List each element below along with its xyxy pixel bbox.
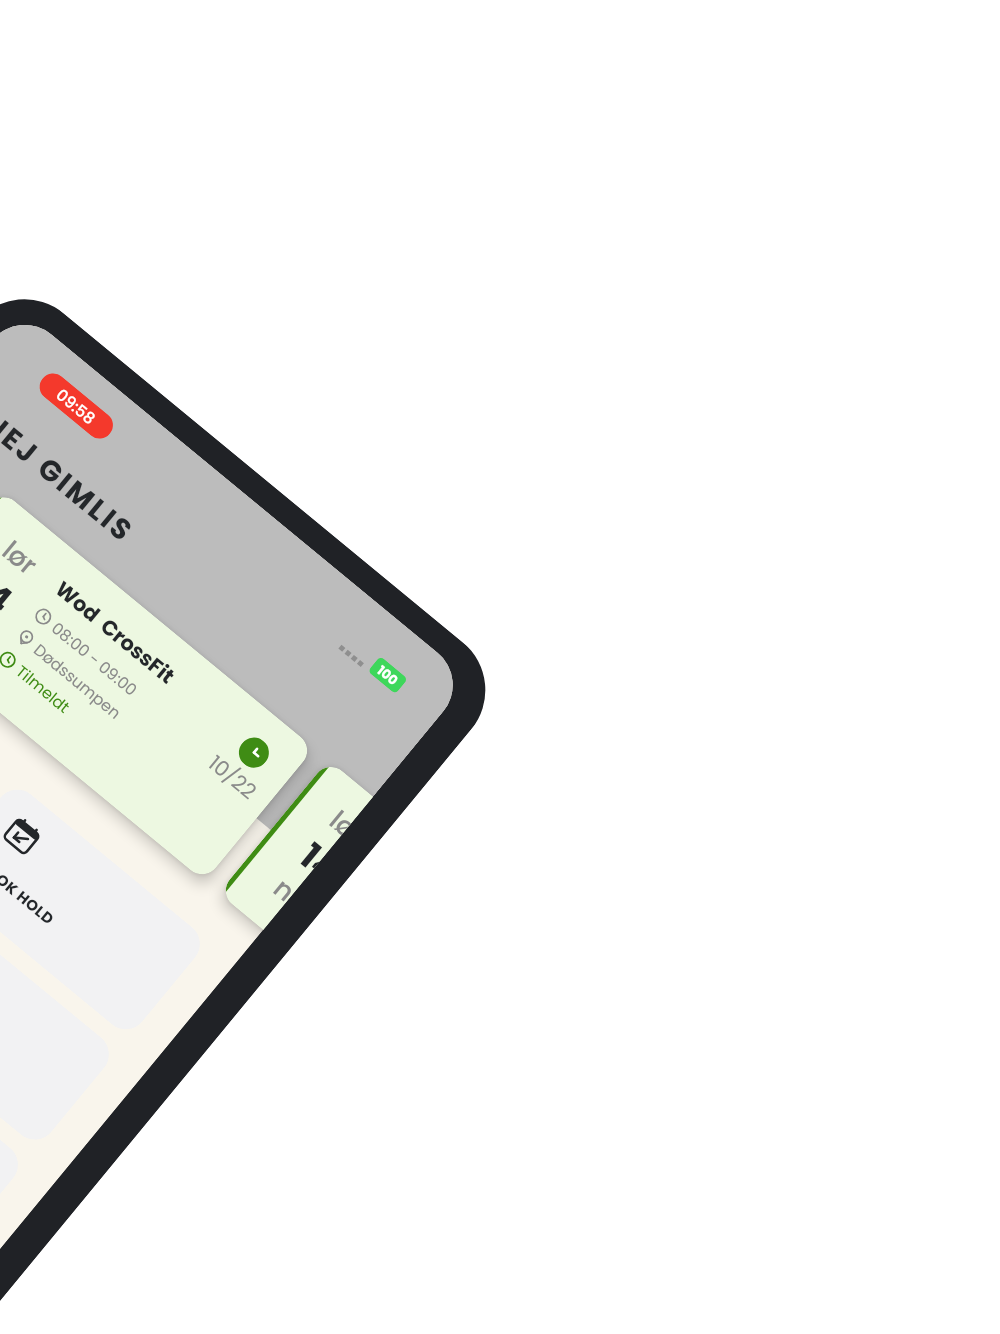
staticText: HEJ GIMLIS xyxy=(0,403,143,553)
staticText: nov xyxy=(265,870,303,911)
staticText: 14 xyxy=(0,562,23,624)
button[interactable]: Book class xyxy=(0,781,209,1038)
staticText: Dødssumpen xyxy=(29,639,126,724)
other: Book class xyxy=(1,814,43,856)
staticText: lør xyxy=(0,532,45,584)
staticText: Tilmeldt xyxy=(11,660,75,718)
button[interactable]: Book class xyxy=(0,610,2,868)
button[interactable]: lør xyxy=(0,490,314,882)
staticText: Wod CrossFit xyxy=(49,574,181,690)
staticText: 10/22 xyxy=(202,749,263,806)
button[interactable]: Book class xyxy=(0,891,118,1148)
staticText: lør xyxy=(321,802,359,843)
button[interactable]: Book class xyxy=(0,1001,27,1259)
staticText: 100 xyxy=(374,661,402,689)
button[interactable]: lør xyxy=(218,760,373,930)
staticText: 14 xyxy=(289,831,335,881)
staticText: 08:00 - 09:00 xyxy=(47,617,142,701)
staticText: BOOK HOLD xyxy=(0,854,59,930)
staticText: 09:58 xyxy=(52,384,100,429)
staticText: nov xyxy=(0,600,1,662)
